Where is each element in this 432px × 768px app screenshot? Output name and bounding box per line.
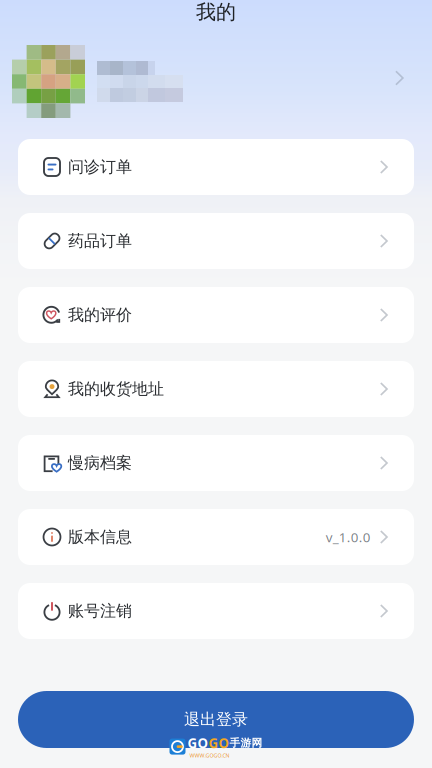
button[interactable]: 账号注销 (18, 583, 414, 639)
staticText: 我的评价 (68, 305, 132, 325)
button[interactable]: 版本信息 (18, 509, 414, 565)
staticText: 账号注销 (68, 601, 132, 621)
button[interactable]: 我的评价 (18, 287, 414, 343)
button[interactable]: 问诊订单 (18, 139, 414, 195)
staticText: 版本信息 (68, 527, 132, 547)
staticText: 我的 (196, 0, 236, 24)
button[interactable] (0, 24, 432, 139)
staticText: GO (208, 734, 229, 752)
staticText: GO (187, 734, 208, 752)
staticText: 手游网 (229, 736, 262, 750)
staticText: WWW.GOGO.CN (189, 752, 229, 759)
button[interactable]: 慢病档案 (18, 435, 414, 491)
button[interactable]: 退出登录 (18, 691, 414, 748)
button[interactable]: 药品订单 (18, 213, 414, 269)
staticText: 退出登录 (184, 710, 248, 729)
staticText: v_1.0.0 (326, 528, 371, 546)
staticText: 慢病档案 (68, 453, 132, 473)
staticText: 我的收货地址 (68, 379, 164, 399)
button[interactable]: 我的收货地址 (18, 361, 414, 417)
staticText: 药品订单 (68, 231, 132, 251)
staticText: 问诊订单 (68, 157, 132, 177)
